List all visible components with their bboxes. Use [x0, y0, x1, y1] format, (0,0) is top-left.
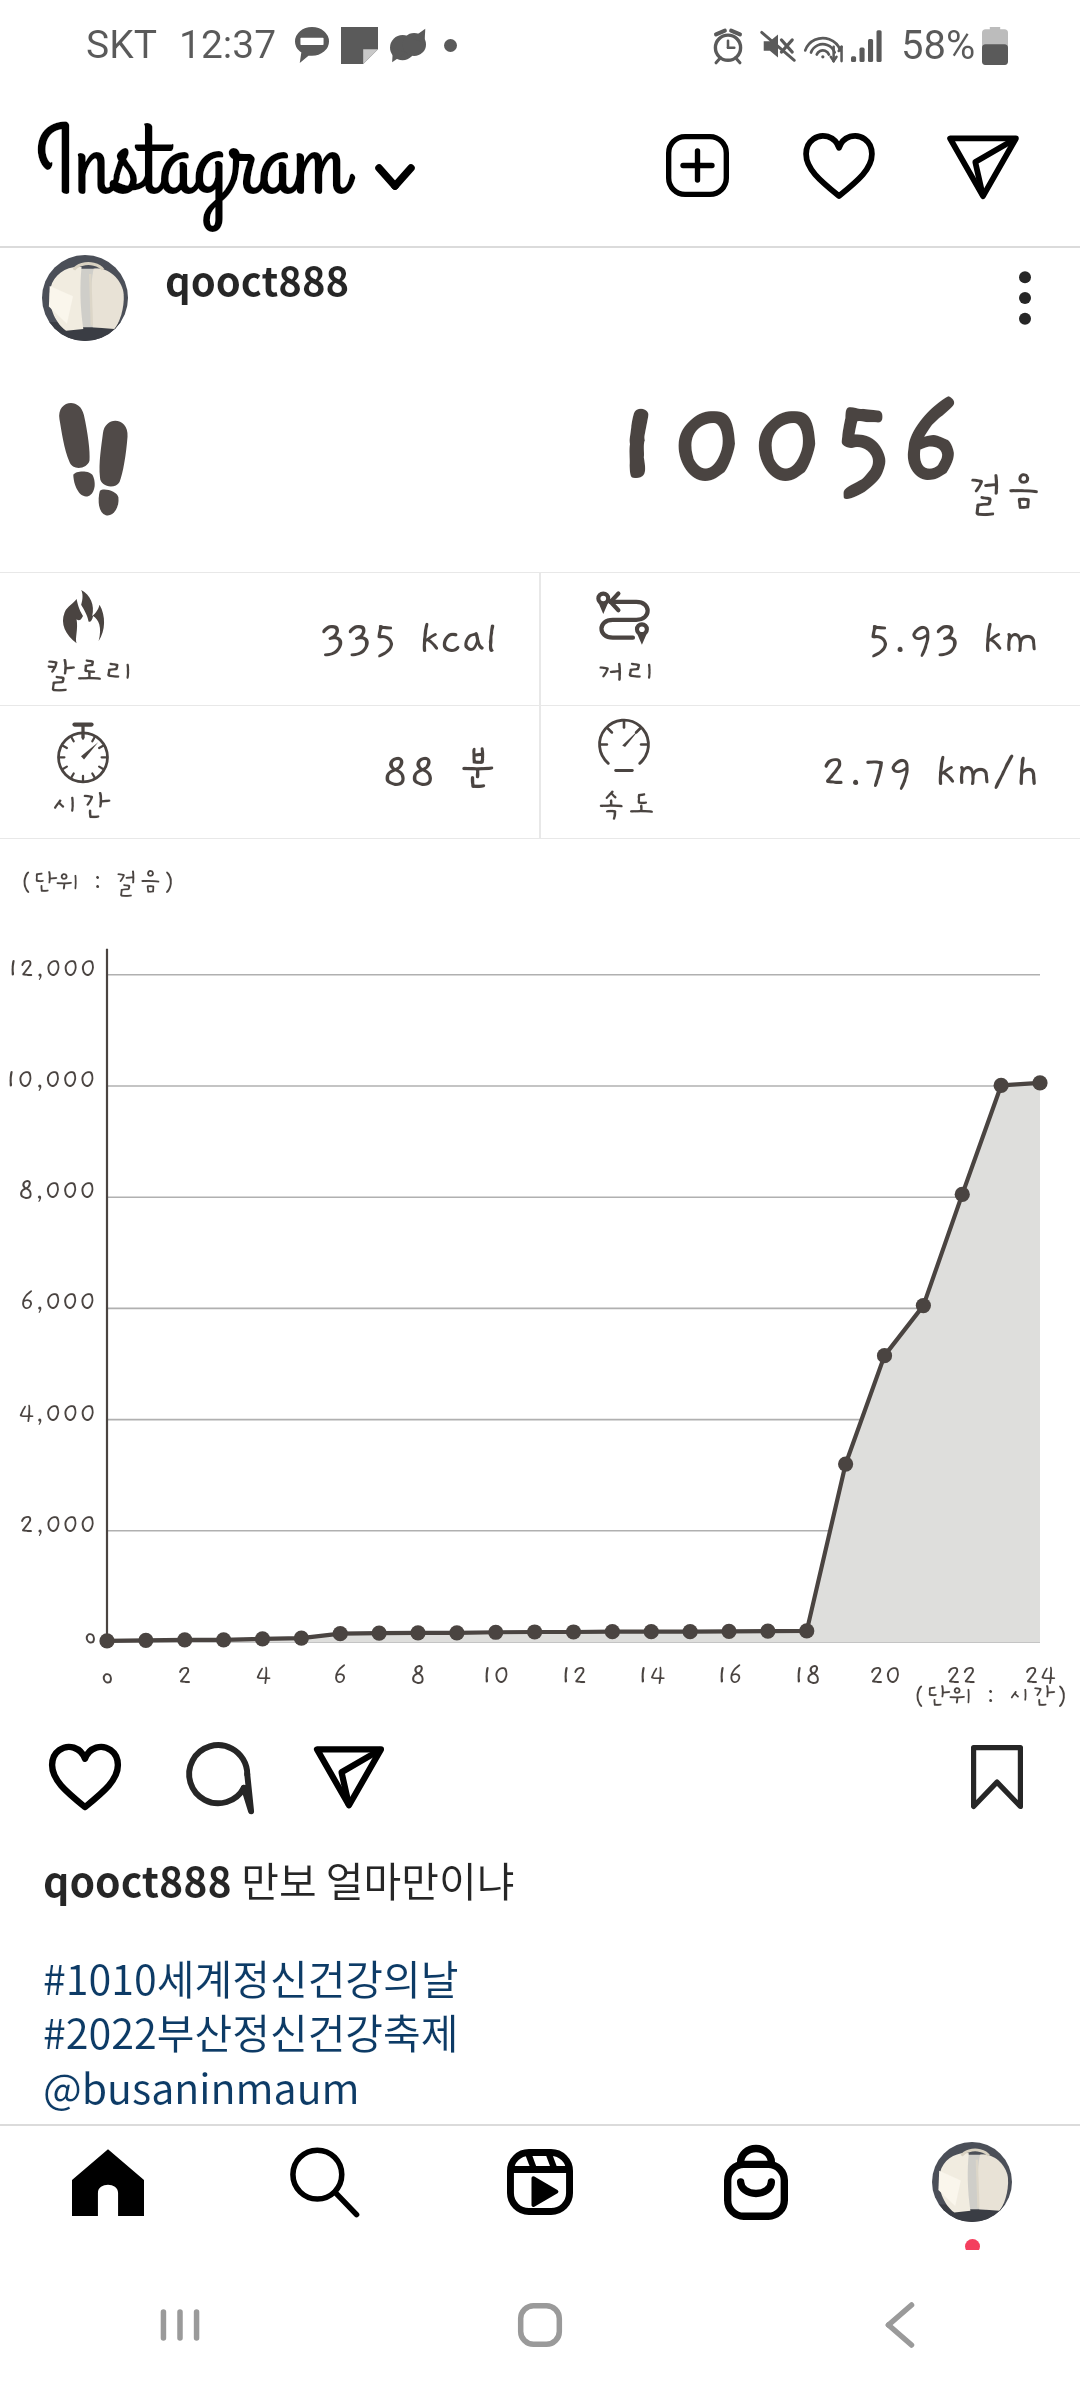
button[interactable]: Recents	[0, 2250, 360, 2400]
staticText: qooct888	[165, 250, 350, 308]
button[interactable]: Save	[950, 1730, 1044, 1824]
staticText: 14	[637, 1661, 666, 1691]
button[interactable]: New post	[652, 120, 742, 210]
staticText: qooct888	[43, 1849, 232, 1908]
staticText: 88 분	[382, 747, 499, 797]
button[interactable]: Reels	[432, 2120, 648, 2244]
staticText: 24	[1024, 1661, 1057, 1691]
staticText: 10	[481, 1661, 511, 1691]
staticText: 12	[560, 1661, 588, 1691]
staticText: o	[101, 1661, 114, 1691]
staticText: 5.93 km	[867, 614, 1040, 664]
staticText: 12,000	[7, 954, 97, 984]
button[interactable]: qooct888	[0, 248, 1080, 348]
staticText: 4	[255, 1661, 272, 1691]
staticText: 만보 얼마만이냐	[232, 1849, 515, 1908]
staticText: 335 kcal	[320, 614, 499, 664]
staticText: 12:37	[179, 22, 277, 68]
staticText: 2,000	[19, 1510, 97, 1540]
staticText: 58%	[901, 22, 976, 69]
staticText: 거리	[596, 655, 657, 692]
staticText: 시간	[50, 788, 111, 825]
staticText: o	[84, 1621, 97, 1651]
button[interactable]: Shop	[648, 2120, 864, 2244]
staticText: SKT	[86, 22, 157, 68]
staticText: (단위 : 시간)	[913, 1682, 1069, 1711]
staticText: Instagram	[36, 98, 347, 231]
staticText: 속도	[596, 788, 657, 825]
button[interactable]: Like	[38, 1730, 132, 1824]
staticText: 16	[716, 1661, 743, 1691]
staticText: 20	[869, 1661, 902, 1691]
staticText: 2.79 km/h	[821, 747, 1040, 797]
button[interactable]: Share	[302, 1730, 396, 1824]
staticText: 걸음	[967, 470, 1043, 516]
staticText: 22	[946, 1661, 978, 1691]
button[interactable]: Home	[360, 2250, 720, 2400]
button[interactable]: Comment	[174, 1730, 268, 1824]
staticText: 2	[177, 1661, 193, 1691]
staticText: #1010세계정신건강의날 #2022부산정신건강축제 @busaninmaum	[43, 1947, 459, 2116]
button[interactable]: Profile	[864, 2120, 1080, 2244]
staticText: 6	[333, 1661, 348, 1691]
button[interactable]: Activity	[794, 121, 884, 211]
button[interactable]: More options	[994, 267, 1056, 329]
staticText: 6,000	[20, 1287, 97, 1317]
button[interactable]: Home	[0, 2120, 216, 2244]
button[interactable]: Search	[216, 2120, 432, 2244]
staticText: 칼로리	[44, 655, 136, 692]
staticText: 8,000	[18, 1176, 97, 1206]
staticText: 18	[793, 1661, 822, 1691]
button[interactable]: Instagram	[36, 98, 413, 231]
staticText: 10056	[609, 378, 966, 518]
staticText: 10,000	[5, 1065, 97, 1095]
staticText: 8	[410, 1661, 427, 1691]
staticText: (단위 : 걸음)	[20, 868, 176, 897]
button[interactable]: Back	[720, 2250, 1080, 2400]
staticText: 4,000	[18, 1399, 97, 1429]
button[interactable]: Messages	[938, 122, 1028, 212]
